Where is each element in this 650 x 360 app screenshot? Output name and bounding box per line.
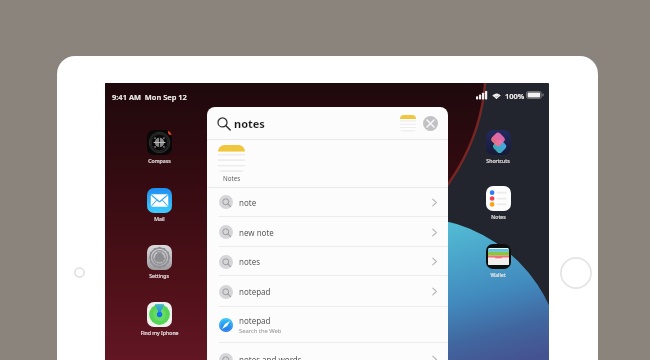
button[interactable]: Wallet xyxy=(471,244,525,278)
button[interactable]: Home xyxy=(560,257,592,289)
staticText: notes xyxy=(234,116,265,131)
staticText: Mail xyxy=(154,215,165,222)
button[interactable]: Notes app xyxy=(400,115,416,132)
other: Search xyxy=(218,118,229,129)
button[interactable]: Find my Iphone xyxy=(132,302,186,336)
staticText: new note xyxy=(239,227,274,238)
staticText: Wallet xyxy=(490,271,506,278)
staticText: notes xyxy=(239,256,261,267)
staticText: 9:41 AM Mon Sep 12 xyxy=(112,92,187,102)
staticText: Find my Iphone xyxy=(140,329,179,336)
button[interactable]: note xyxy=(207,187,448,217)
staticText: notes and words xyxy=(239,354,302,360)
staticText: Search the Web xyxy=(239,327,282,335)
button[interactable]: Mail xyxy=(132,188,186,222)
button[interactable]: Settings xyxy=(132,245,186,279)
button[interactable]: Notes xyxy=(218,145,245,182)
button[interactable]: Shortcuts xyxy=(471,130,525,164)
button[interactable]: Compass xyxy=(132,130,186,164)
button[interactable]: new note xyxy=(207,217,448,247)
button[interactable]: notes xyxy=(207,247,448,276)
button[interactable]: Search xyxy=(207,107,448,139)
button[interactable]: Notes xyxy=(471,186,525,220)
staticText: Notes xyxy=(223,174,241,182)
staticText: Notes xyxy=(491,213,506,220)
staticText: 100% xyxy=(505,91,525,101)
staticText: notepad xyxy=(239,315,271,326)
button[interactable]: Clear search xyxy=(423,116,438,131)
button[interactable]: notes and words xyxy=(207,343,448,360)
staticText: Settings xyxy=(149,272,169,279)
staticText: notepad xyxy=(239,286,271,297)
button[interactable]: notepad xyxy=(207,307,448,343)
staticText: note xyxy=(239,197,257,208)
staticText: Shortcuts xyxy=(486,157,510,164)
button[interactable]: notepad xyxy=(207,276,448,307)
staticText: Compass xyxy=(148,157,171,164)
